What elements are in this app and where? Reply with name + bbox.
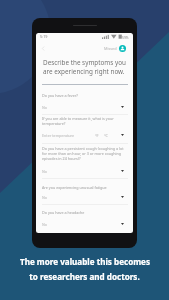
staticText: No bbox=[42, 169, 48, 174]
staticText: 5:19 bbox=[40, 34, 48, 39]
staticText: If you are able to measure it, what is y… bbox=[42, 116, 114, 121]
staticText: No bbox=[42, 105, 48, 110]
staticText: Do you have a headache bbox=[42, 210, 85, 215]
staticText: °C bbox=[104, 133, 108, 138]
staticText: The more valuable this becomes bbox=[20, 256, 150, 267]
button[interactable]: Account bbox=[104, 44, 126, 53]
staticText: Missed bbox=[104, 46, 117, 51]
button[interactable]: No bbox=[42, 168, 124, 174]
staticText: for more than an hour, or 3 or more coug… bbox=[42, 151, 122, 156]
staticText: to researchers and doctors. bbox=[29, 271, 140, 282]
staticText: are experiencing right now. bbox=[43, 67, 125, 76]
staticText: 59% bbox=[122, 35, 129, 39]
staticText: Do you have a persistent cough (coughing… bbox=[42, 146, 124, 151]
staticText: No bbox=[42, 195, 48, 200]
button[interactable]: No bbox=[42, 221, 124, 227]
staticText: No bbox=[42, 222, 48, 227]
button[interactable]: No bbox=[42, 104, 124, 110]
staticText: Enter temperature bbox=[42, 133, 75, 138]
staticText: Do you have a fever? bbox=[42, 93, 78, 98]
staticText: episodes in 24 hours)? bbox=[42, 156, 81, 161]
button[interactable]: Enter temperature bbox=[42, 132, 124, 138]
button[interactable]: No bbox=[42, 194, 124, 200]
staticText: Describe the symptoms you bbox=[43, 58, 126, 67]
staticText: °F bbox=[95, 133, 99, 138]
staticText: temperature? bbox=[42, 121, 66, 126]
staticText: Are you experiencing unusual fatigue bbox=[42, 185, 107, 190]
